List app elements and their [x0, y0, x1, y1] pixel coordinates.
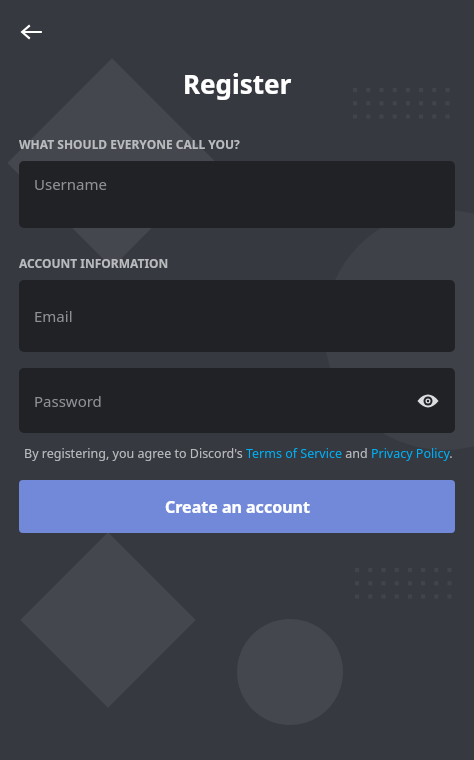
staticText: Username: [34, 174, 107, 194]
staticText: Register: [183, 66, 292, 101]
staticText: Create an account: [165, 496, 310, 518]
staticText: Email: [34, 306, 73, 326]
staticText: ACCOUNT INFORMATION: [19, 255, 169, 271]
button[interactable]: Back: [10, 10, 54, 54]
button[interactable]: Username: [19, 161, 455, 228]
staticText: WHAT SHOULD EVERYONE CALL YOU?: [19, 136, 240, 152]
button[interactable]: Password: [19, 368, 455, 433]
button[interactable]: Create an account: [19, 480, 455, 533]
button[interactable]: Show password: [409, 382, 447, 420]
button[interactable]: By registering, you agree to Discord's T…: [24, 445, 455, 462]
button[interactable]: Email: [19, 280, 455, 352]
staticText: Password: [34, 391, 102, 411]
